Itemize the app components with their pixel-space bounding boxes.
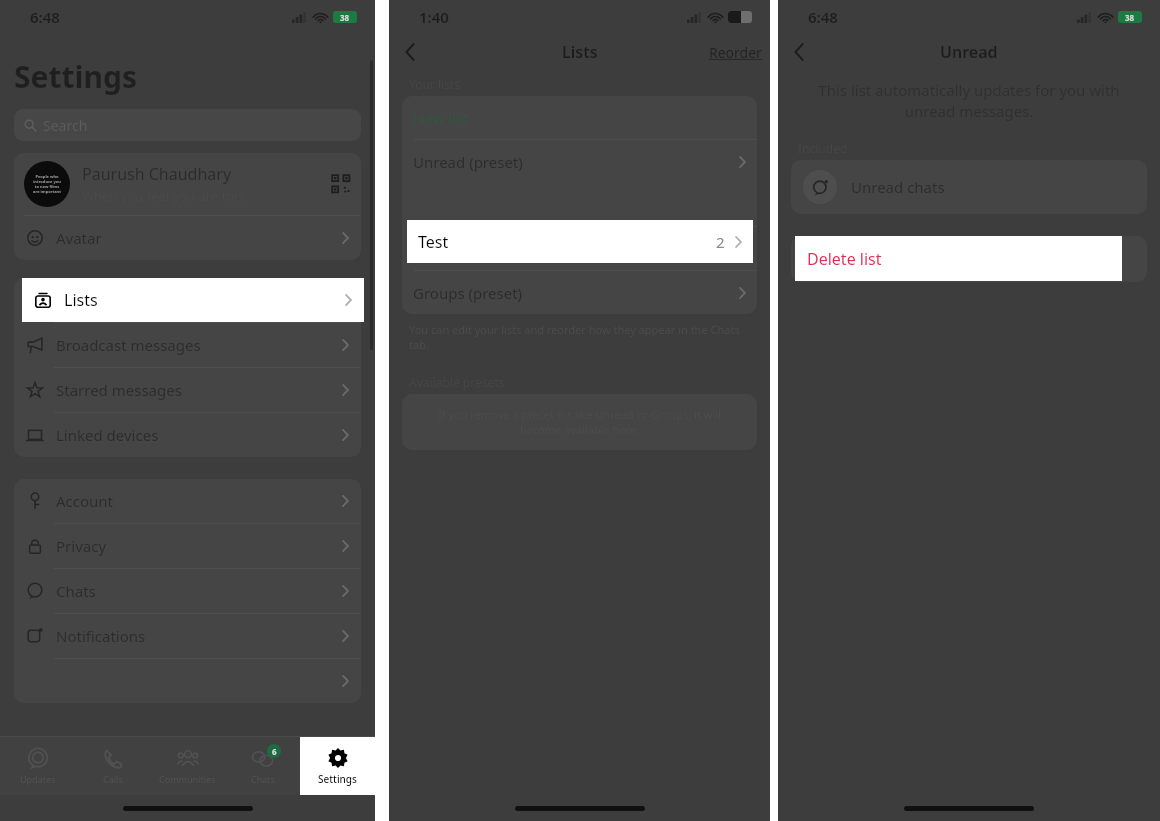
staticText: Groups (preset): [413, 283, 523, 303]
staticText: 6: [272, 746, 277, 757]
staticText: Settings: [318, 772, 357, 786]
staticText: Account: [56, 491, 114, 511]
staticText: Settings: [14, 56, 137, 97]
staticText: Search: [43, 116, 88, 135]
button[interactable]: Lists: [22, 278, 364, 322]
button[interactable]: Unread (preset): [402, 140, 757, 183]
button[interactable]: Privacy: [14, 524, 361, 568]
staticText: 6:48: [30, 7, 60, 27]
button[interactable]: Unread chats: [791, 160, 1147, 214]
staticText: 38: [1125, 12, 1135, 23]
staticText: This list automatically updates for you …: [804, 80, 1134, 122]
button[interactable]: Linked devices: [14, 413, 361, 457]
staticText: 2: [716, 232, 725, 252]
staticText: Starred messages: [56, 380, 182, 400]
button[interactable]: 6: [225, 737, 300, 795]
staticText: New list: [413, 108, 469, 128]
button[interactable]: QR code: [331, 174, 351, 194]
staticText: Unread (preset): [413, 152, 523, 172]
button[interactable]: Avatar: [14, 216, 361, 260]
button[interactable]: Updates: [0, 737, 75, 795]
staticText: Unread chats: [851, 177, 945, 197]
staticText: Lists: [64, 289, 98, 311]
staticText: Privacy: [56, 536, 107, 556]
staticText: 6:48: [808, 7, 838, 27]
button[interactable]: Notifications: [14, 614, 361, 658]
staticText: Favorites: [413, 239, 478, 259]
staticText: Unread: [940, 41, 998, 63]
button[interactable]: Communities: [150, 737, 225, 795]
staticText: Paurush Chaudhary: [82, 163, 232, 185]
button[interactable]: Starred messages: [14, 368, 361, 412]
button[interactable]: Reorder: [709, 43, 762, 62]
staticText: Chats: [56, 581, 96, 601]
button[interactable]: Account: [14, 479, 361, 523]
staticText: Avatar: [56, 228, 102, 248]
button[interactable]: Broadcast messages: [14, 323, 361, 367]
staticText: Communities: [159, 773, 216, 785]
staticText: 38: [340, 12, 350, 23]
button[interactable]: Favorites: [402, 227, 757, 270]
staticText: People who introduce you to new films ar…: [33, 174, 61, 194]
button[interactable]: Back: [786, 39, 812, 65]
staticText: 1:40: [419, 7, 449, 27]
staticText: Test: [418, 231, 449, 253]
staticText: Chats: [251, 773, 275, 785]
button[interactable]: Delete list: [795, 236, 1122, 281]
staticText: Lists: [562, 41, 598, 63]
staticText: Linked devices: [56, 425, 159, 445]
staticText: Updates: [20, 773, 56, 785]
button[interactable]: Test: [407, 220, 753, 263]
staticText: Notifications: [56, 626, 146, 646]
button[interactable]: People who introduce you to new films ar…: [14, 153, 361, 215]
staticText: Broadcast messages: [56, 335, 201, 355]
button[interactable]: Groups (preset): [402, 271, 757, 314]
button[interactable]: Settings: [300, 737, 375, 795]
staticText: Delete list: [807, 248, 882, 270]
button[interactable]: Back: [397, 39, 423, 65]
staticText: Reorder: [709, 43, 762, 62]
staticText: Calls: [103, 773, 123, 785]
